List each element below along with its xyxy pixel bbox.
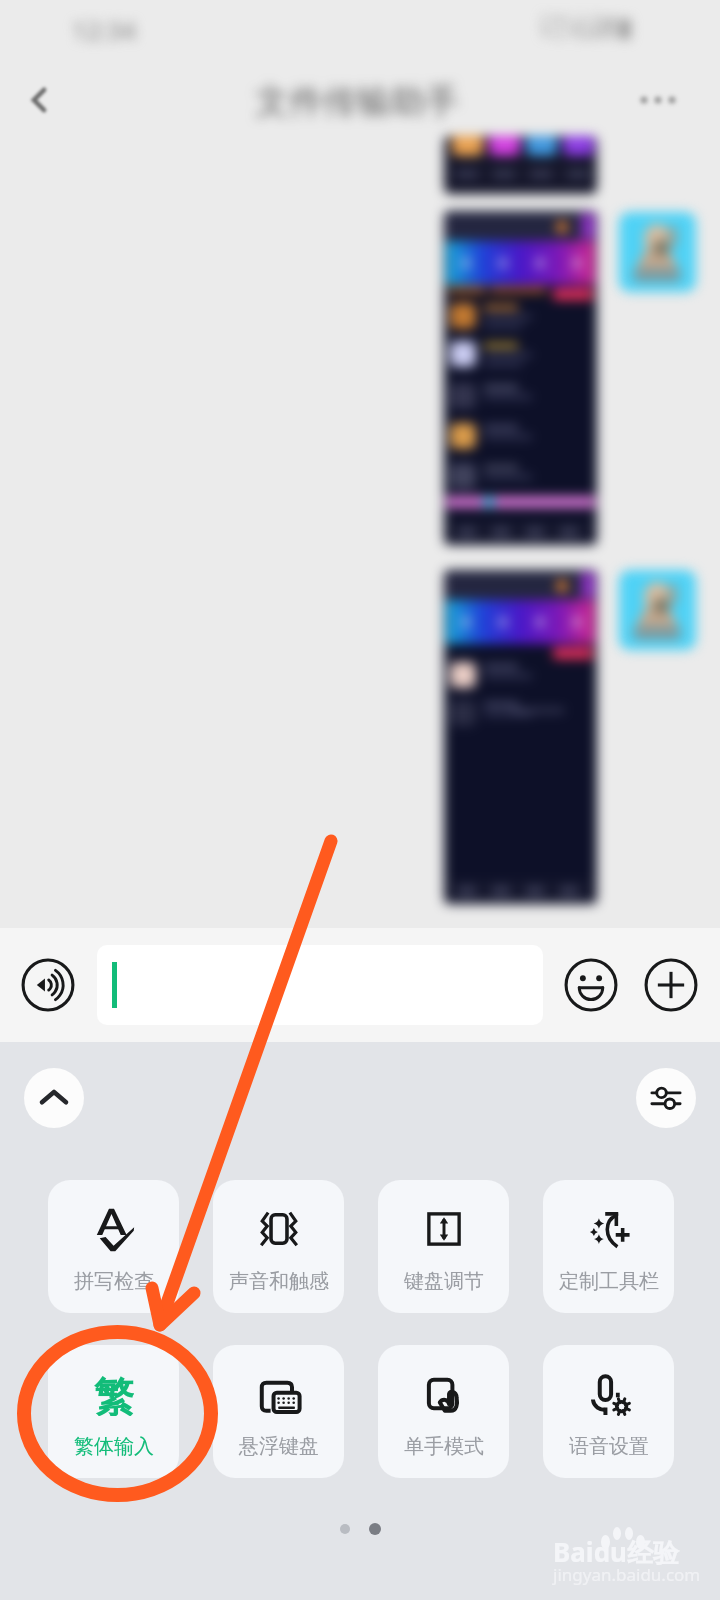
button[interactable]: 拼写检查 [48,1180,179,1313]
staticText: 拼写检查 [74,1269,154,1294]
button[interactable]: 定制工具栏 [543,1180,674,1313]
staticText: 悬浮键盘 [239,1434,319,1459]
button[interactable]: 繁 [48,1345,179,1478]
staticText: 单手模式 [404,1434,484,1459]
button[interactable]: 键盘调节 [378,1180,509,1313]
staticText: 繁体输入 [74,1434,154,1459]
staticText: Baidu经验 [553,1534,679,1570]
button[interactable]: Keyboard settings [636,1068,696,1128]
staticText: 定制工具栏 [559,1269,659,1294]
staticText: 键盘调节 [404,1269,484,1294]
staticText: 语音设置 [569,1434,649,1459]
button[interactable]: Voice input [12,953,84,1017]
button[interactable]: 悬浮键盘 [213,1345,344,1478]
button[interactable]: More options [639,953,703,1017]
staticText: 繁 [94,1372,134,1416]
staticText: 12:34 [72,13,137,47]
button[interactable] [97,945,543,1025]
button[interactable]: 语音设置 [543,1345,674,1478]
button[interactable]: Emoji [559,953,623,1017]
button[interactable]: 声音和触感 [213,1180,344,1313]
staticText: jingyan.baidu.com [553,1563,701,1586]
staticText: 声音和触感 [229,1269,329,1294]
button[interactable]: Back [8,68,72,132]
button[interactable]: Collapse keyboard [24,1068,84,1128]
staticText: 订沁訩▮ [540,11,633,44]
button[interactable]: More options [626,68,690,132]
staticText: 文件传输助手 [255,80,459,123]
button[interactable]: 单手模式 [378,1345,509,1478]
